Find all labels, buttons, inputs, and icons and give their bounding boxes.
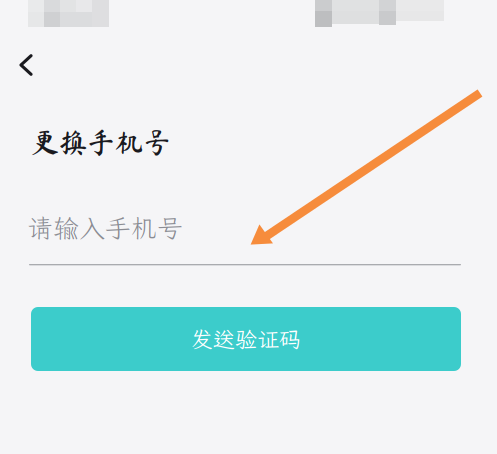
staticText: 发送验证码 <box>191 324 301 353</box>
button[interactable]: 发送验证码 <box>31 307 461 371</box>
button[interactable]: Back <box>4 43 48 87</box>
staticText: 更换手机号 <box>31 128 171 156</box>
staticText: 请输入手机号 <box>27 211 183 245</box>
